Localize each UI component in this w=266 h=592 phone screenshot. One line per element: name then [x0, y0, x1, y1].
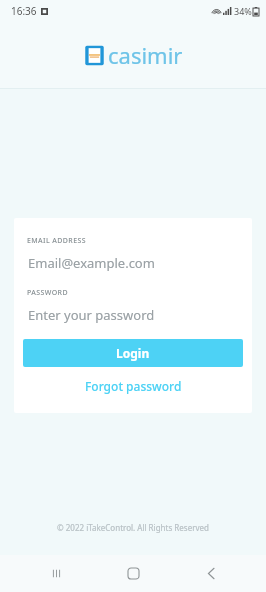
staticText: Login	[116, 345, 150, 361]
button[interactable]: Back	[189, 555, 233, 592]
staticText: EMAIL ADDRESS	[27, 236, 86, 246]
staticText: © 2022 iTakeControl. All Rights Reserved	[0, 522, 266, 533]
staticText: Email@example.com	[28, 254, 155, 272]
staticText: 34%	[234, 5, 252, 17]
button[interactable]: Enter your password	[23, 304, 243, 326]
button[interactable]: Recent apps	[34, 555, 78, 592]
button[interactable]: Email@example.com	[23, 252, 243, 274]
button[interactable]: Forgot password	[14, 371, 252, 401]
button[interactable]: Login	[23, 339, 243, 367]
staticText: casimir	[108, 40, 183, 70]
staticText: Forgot password	[85, 378, 182, 394]
staticText: Enter your password	[28, 306, 155, 324]
staticText: 16:36	[11, 4, 37, 18]
staticText: PASSWORD	[27, 288, 68, 298]
button[interactable]: Home	[111, 555, 155, 592]
